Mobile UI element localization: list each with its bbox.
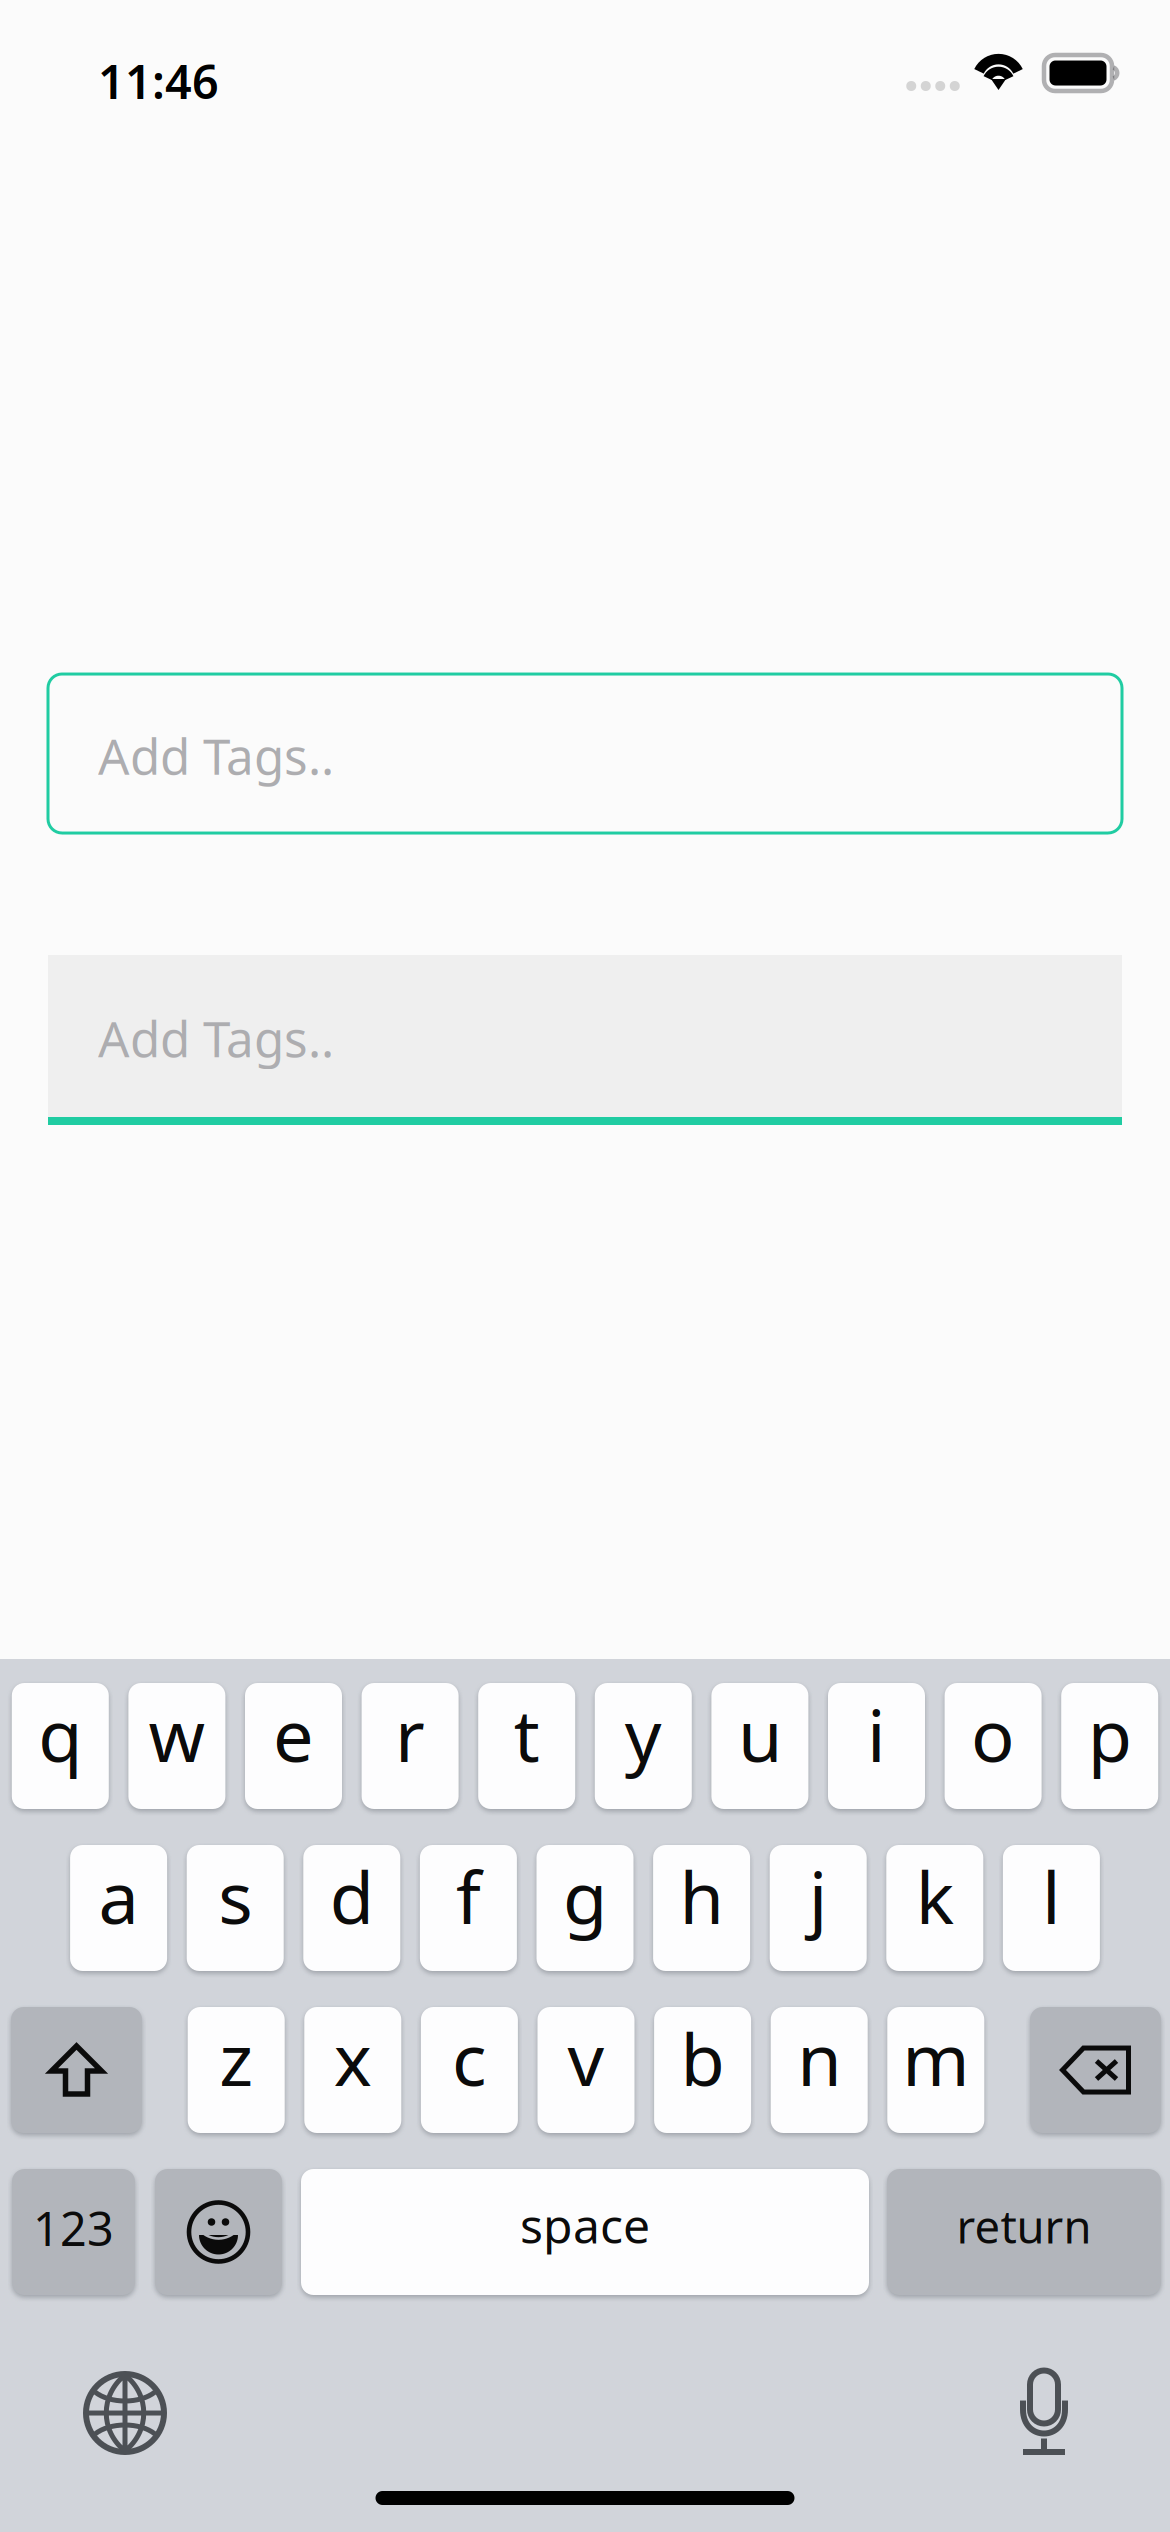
button[interactable]: space: [301, 2169, 869, 2295]
staticText: o: [971, 1686, 1015, 1782]
button[interactable]: r: [362, 1683, 459, 1809]
staticText: l: [1042, 1848, 1061, 1944]
button[interactable]: Delete: [1030, 2007, 1161, 2133]
staticText: h: [680, 1848, 724, 1944]
button[interactable]: Add Tags..: [48, 955, 1122, 1125]
staticText: z: [219, 2010, 253, 2106]
staticText: 123: [33, 2197, 114, 2259]
button[interactable]: return: [887, 2169, 1161, 2295]
staticText: f: [456, 1848, 481, 1944]
staticText: space: [520, 2193, 650, 2257]
staticText: x: [334, 2010, 372, 2106]
button[interactable]: j: [770, 1845, 867, 1971]
button[interactable]: h: [653, 1845, 750, 1971]
button[interactable]: Shift: [11, 2007, 142, 2133]
button[interactable]: f: [420, 1845, 517, 1971]
staticText: y: [625, 1686, 662, 1782]
button[interactable]: p: [1061, 1683, 1158, 1809]
staticText: d: [330, 1848, 374, 1944]
button[interactable]: k: [886, 1845, 983, 1971]
button[interactable]: a: [70, 1845, 167, 1971]
button[interactable]: c: [421, 2007, 518, 2133]
button[interactable]: e: [245, 1683, 342, 1809]
staticText: return: [956, 2196, 1091, 2256]
staticText: u: [738, 1686, 782, 1782]
button[interactable]: l: [1003, 1845, 1100, 1971]
button[interactable]: w: [128, 1683, 225, 1809]
staticText: w: [148, 1686, 205, 1782]
button[interactable]: g: [536, 1845, 633, 1971]
button[interactable]: b: [654, 2007, 751, 2133]
staticText: i: [867, 1686, 886, 1782]
button[interactable]: t: [478, 1683, 575, 1809]
staticText: b: [681, 2010, 725, 2106]
button[interactable]: x: [304, 2007, 401, 2133]
button[interactable]: n: [771, 2007, 868, 2133]
staticText: Add Tags..: [98, 723, 334, 788]
button[interactable]: q: [12, 1683, 109, 1809]
staticText: n: [797, 2010, 841, 2106]
staticText: 11:46: [98, 50, 219, 112]
staticText: j: [809, 1848, 828, 1944]
staticText: t: [514, 1686, 540, 1782]
button[interactable]: s: [187, 1845, 284, 1971]
staticText: v: [567, 2010, 604, 2106]
button[interactable]: i: [828, 1683, 925, 1809]
staticText: c: [452, 2010, 487, 2106]
button[interactable]: Dictation: [986, 2371, 1108, 2455]
button[interactable]: v: [537, 2007, 634, 2133]
staticText: q: [38, 1686, 82, 1782]
staticText: s: [218, 1848, 252, 1944]
staticText: p: [1088, 1686, 1132, 1782]
button[interactable]: z: [188, 2007, 285, 2133]
staticText: a: [99, 1848, 139, 1944]
button[interactable]: m: [887, 2007, 984, 2133]
button[interactable]: d: [303, 1845, 400, 1971]
button[interactable]: Next keyboard: [64, 2370, 186, 2456]
staticText: Add Tags..: [98, 1005, 334, 1071]
staticText: k: [916, 1848, 954, 1944]
button[interactable]: y: [595, 1683, 692, 1809]
staticText: g: [563, 1848, 607, 1944]
staticText: m: [902, 2010, 969, 2106]
staticText: e: [273, 1686, 314, 1782]
button[interactable]: u: [711, 1683, 808, 1809]
staticText: r: [395, 1686, 425, 1782]
button[interactable]: Emoji: [155, 2169, 282, 2295]
button[interactable]: o: [945, 1683, 1042, 1809]
button[interactable]: Add Tags..: [48, 674, 1122, 833]
button[interactable]: 123: [12, 2169, 135, 2295]
